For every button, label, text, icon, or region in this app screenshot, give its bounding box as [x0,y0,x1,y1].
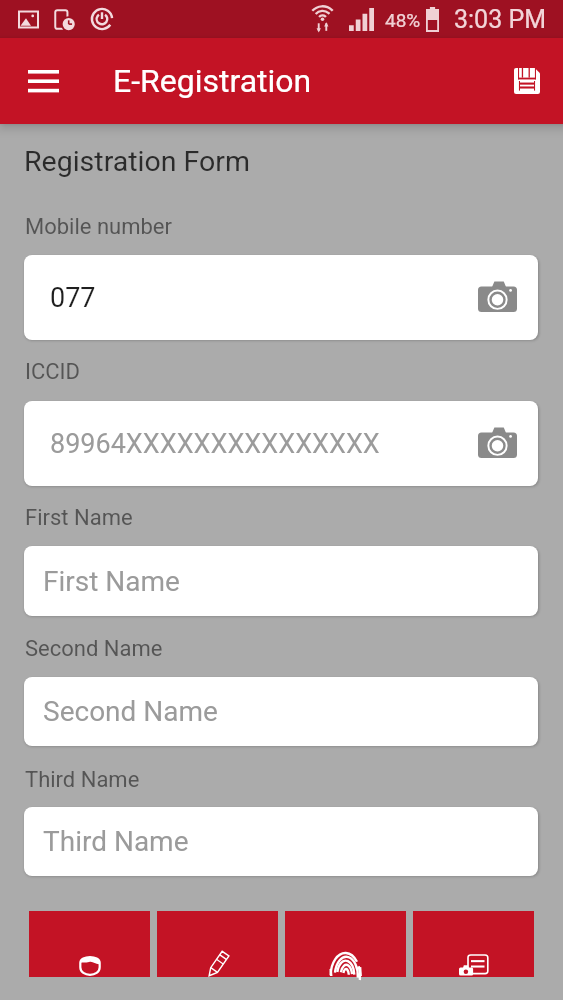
staticText: 077 [50,282,96,314]
button[interactable]: Photo [29,911,150,977]
staticText: Third Name [43,825,189,858]
staticText: ICCID [25,359,81,385]
staticText: Third Name [25,767,140,793]
button[interactable]: Open navigation menu [21,59,65,103]
button[interactable]: Second Name [24,677,538,746]
button[interactable]: Scan with camera [475,422,519,466]
staticText: 3:03 PM [454,5,547,34]
button[interactable]: Third Name [24,807,538,876]
button[interactable]: 89964XXXXXXXXXXXXXXX [24,401,538,486]
staticText: Registration Form [24,145,250,178]
button[interactable]: Save [505,59,549,103]
staticText: Second Name [43,695,218,728]
staticText: First Name [43,565,180,598]
button[interactable]: Signature [157,911,278,977]
staticText: E-Registration [113,62,312,100]
staticText: 89964XXXXXXXXXXXXXXX [50,428,380,460]
button[interactable]: Fingerprint [285,911,406,977]
staticText: Mobile number [25,214,172,240]
button[interactable]: First Name [24,546,538,616]
staticText: First Name [25,505,133,531]
button[interactable]: 077 [24,255,538,340]
staticText: Second Name [25,636,163,662]
button[interactable]: Scan with camera [475,276,519,320]
button[interactable]: Documents [413,911,534,977]
staticText: 48% [385,9,421,31]
